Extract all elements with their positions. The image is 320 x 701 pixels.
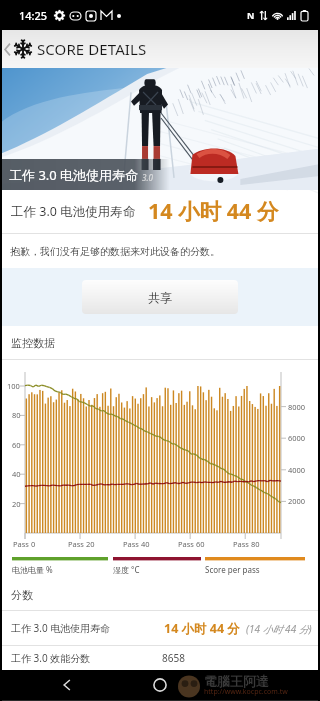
staticText: 工作 3.0 电池使用寿命 <box>11 203 136 220</box>
staticText: 14:25 <box>19 8 48 23</box>
button[interactable]: 共享 <box>82 280 238 314</box>
staticText: N <box>247 9 255 21</box>
staticText: 6000 <box>288 433 306 443</box>
staticText: 8000 <box>288 402 306 412</box>
button[interactable]: Back <box>58 676 76 694</box>
staticText: 工作 3.0 电池使用寿命 <box>11 621 111 635</box>
staticText: SCORE DETAILS <box>37 39 147 59</box>
staticText: 3.0 <box>142 172 153 183</box>
staticText: 抱歉，我们没有足够的数据来对此设备的分数。 <box>10 245 220 258</box>
staticText: 湿度 °C <box>113 564 140 575</box>
button[interactable]: 工作 3.0 效能分数 <box>0 646 320 670</box>
staticText: 14 小时 44 分 <box>148 196 279 225</box>
button[interactable]: Home <box>152 677 168 693</box>
staticText: Pass 40 <box>123 539 150 549</box>
staticText: Score per pass <box>205 564 260 575</box>
staticText: 8658 <box>162 651 185 665</box>
staticText: Pass 60 <box>178 539 205 549</box>
staticText: 40 <box>12 469 21 479</box>
button[interactable]: 工作 3.0 电池使用寿命 <box>0 611 320 645</box>
staticText: 14 小时 44 分 <box>164 620 240 637</box>
staticText: 電腦王阿達 <box>204 673 269 689</box>
staticText: 100 <box>7 381 20 391</box>
staticText: 60 <box>12 440 21 450</box>
staticText: 2000 <box>288 496 306 506</box>
staticText: 分数 <box>11 588 33 602</box>
staticText: 工作 3.0 电池使用寿命 <box>9 166 139 184</box>
staticText: 工作 3.0 效能分数 <box>11 651 91 665</box>
staticText: 4000 <box>288 465 306 475</box>
button[interactable]: Back <box>0 30 320 68</box>
staticText: Pass 80 <box>233 539 260 549</box>
staticText: Pass 20 <box>68 539 95 549</box>
staticText: 监控数据 <box>11 336 55 350</box>
staticText: 80 <box>12 410 21 420</box>
staticText: http://www.kocpc.com.tw <box>204 687 288 697</box>
staticText: (14 小时 44 分) <box>246 622 312 636</box>
staticText: Pass 0 <box>13 539 36 549</box>
staticText: 电池电量 % <box>12 564 53 575</box>
staticText: 共享 <box>148 290 172 305</box>
other: Back <box>4 43 11 56</box>
staticText: 20 <box>12 499 21 509</box>
